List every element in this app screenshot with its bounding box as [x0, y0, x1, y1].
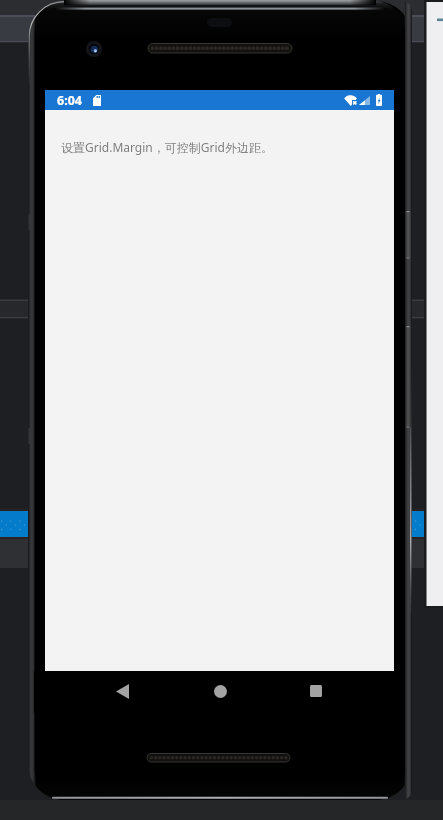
staticText: 6:04 — [57, 92, 82, 109]
button[interactable]: Home — [206, 677, 234, 705]
staticText: 设置Grid.Margin，可控制Grid外边距。 — [61, 139, 273, 155]
button[interactable]: Back — [108, 677, 136, 705]
button[interactable]: Recent apps — [302, 677, 330, 705]
